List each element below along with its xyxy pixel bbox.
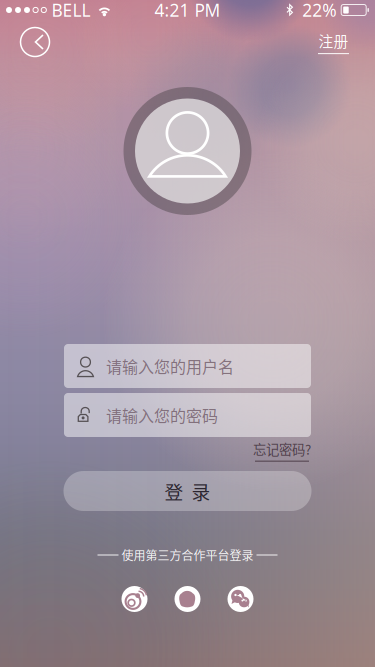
- button[interactable]: 请输入您的用户名: [64, 344, 311, 388]
- staticText: 22%: [302, 0, 336, 21]
- button[interactable]: 注册: [310, 23, 357, 61]
- staticText: 4:21 PM: [154, 0, 220, 21]
- button[interactable]: 请输入您的密码: [64, 393, 311, 437]
- staticText: 使用第三方合作平台登录: [121, 546, 253, 564]
- button[interactable]: Back: [14, 21, 56, 63]
- button[interactable]: 忘记密码?: [253, 442, 311, 458]
- staticText: 请输入您的用户名: [106, 354, 234, 378]
- staticText: 请输入您的密码: [106, 403, 218, 427]
- staticText: 登 录: [164, 477, 210, 504]
- staticText: 忘记密码?: [253, 439, 311, 459]
- button[interactable]: 微博登录: [121, 586, 147, 612]
- button[interactable]: 登 录: [63, 471, 311, 511]
- button[interactable]: 微信登录: [227, 586, 253, 612]
- staticText: BELL: [51, 0, 90, 21]
- staticText: 注册: [318, 30, 348, 51]
- button[interactable]: QQ 登录: [174, 586, 200, 612]
